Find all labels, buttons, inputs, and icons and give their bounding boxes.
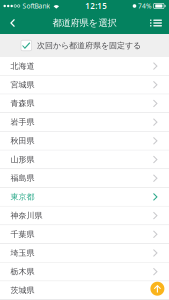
- staticText: 青森県: [10, 98, 34, 108]
- staticText: 栃木県: [10, 267, 34, 276]
- staticText: 都道府県を選択: [52, 17, 116, 29]
- button[interactable]: 福島県: [0, 169, 169, 188]
- button[interactable]: 山形県: [0, 150, 169, 169]
- button[interactable]: メニュー: [146, 12, 165, 34]
- button[interactable]: 北海道: [0, 57, 169, 76]
- button[interactable]: 先頭へ戻る: [150, 282, 164, 296]
- staticText: 山形県: [10, 155, 34, 164]
- staticText: 茨城県: [10, 285, 34, 295]
- button[interactable]: 宮城県: [0, 76, 169, 94]
- staticText: 北海道: [10, 61, 34, 71]
- staticText: 宮城県: [10, 80, 34, 90]
- button[interactable]: 千葉県: [0, 225, 169, 244]
- staticText: 岩手県: [10, 117, 34, 127]
- staticText: 74%: [138, 2, 152, 10]
- staticText: 埼玉県: [10, 248, 34, 258]
- button[interactable]: 次回から都道府県を固定する: [0, 34, 169, 57]
- button[interactable]: 茨城県: [0, 281, 169, 300]
- button[interactable]: 栃木県: [0, 263, 169, 281]
- button[interactable]: 戻る: [2, 12, 22, 34]
- button[interactable]: 秋田県: [0, 132, 169, 150]
- button[interactable]: 東京都: [0, 188, 169, 206]
- button[interactable]: 神奈川県: [0, 206, 169, 225]
- staticText: 東京都: [10, 192, 34, 202]
- button[interactable]: 埼玉県: [0, 244, 169, 263]
- staticText: 千葉県: [10, 229, 34, 239]
- staticText: 神奈川県: [10, 211, 42, 220]
- staticText: 秋田県: [10, 136, 34, 146]
- button[interactable]: 岩手県: [0, 113, 169, 132]
- staticText: 次回から都道府県を固定する: [37, 41, 141, 50]
- staticText: SoftBank: [22, 2, 50, 10]
- staticText: 福島県: [10, 173, 34, 183]
- button[interactable]: 青森県: [0, 94, 169, 113]
- staticText: 12:15: [85, 1, 107, 11]
